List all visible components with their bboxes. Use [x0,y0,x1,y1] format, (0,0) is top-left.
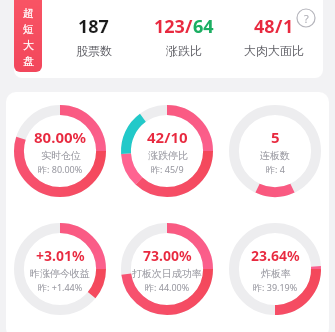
staticText: 80.00% [34,127,87,147]
staticText: 1 [283,14,294,39]
button[interactable]: 123 [139,0,229,72]
staticText: 涨跌比 [166,43,202,58]
staticText: / [185,14,193,39]
button[interactable]: +3.01% [6,210,113,328]
staticText: 连板数 [260,149,290,162]
button[interactable]: Help [296,8,316,28]
staticText: / [275,14,283,39]
staticText: 昨: 39.19% [253,281,298,293]
button[interactable]: 73.00% [113,210,221,328]
staticText: 涨跌停比 [148,149,188,162]
button[interactable]: 80.00% [6,92,113,210]
staticText: 187 [78,14,109,39]
button[interactable]: 42/10 [113,92,221,210]
button[interactable]: 48 [229,0,319,72]
button[interactable]: 187 [48,0,139,72]
staticText: 昨: +1.44% [38,281,83,293]
staticText: 打板次日成功率 [132,267,202,280]
staticText: 昨: 44.00% [145,281,190,293]
staticText: 73.00% [143,246,192,265]
staticText: 炸板率 [261,267,291,280]
staticText: 48 [254,14,275,39]
staticText: 昨: 45/9 [151,163,184,175]
button[interactable]: 超 [14,0,42,72]
staticText: 昨: 80.00% [38,163,83,175]
staticText: 大 [23,38,34,52]
staticText: 23.64% [251,246,300,265]
staticText: 超 [23,6,34,20]
button[interactable]: 23.64% [221,210,329,328]
staticText: ? [304,11,309,26]
staticText: 昨涨停今收益 [30,267,90,280]
staticText: 5 [271,127,280,147]
button[interactable]: 5 [221,92,329,210]
staticText: 股票数 [76,43,112,58]
staticText: 大肉大面比 [244,43,304,58]
staticText: 昨: 4 [266,163,285,175]
staticText: 42/10 [147,127,188,147]
staticText: 短 [23,22,34,36]
staticText: 实时仓位 [41,149,81,162]
staticText: 64 [193,14,214,39]
staticText: 123 [154,14,185,39]
staticText: +3.01% [36,246,85,265]
staticText: 盘 [23,54,34,68]
